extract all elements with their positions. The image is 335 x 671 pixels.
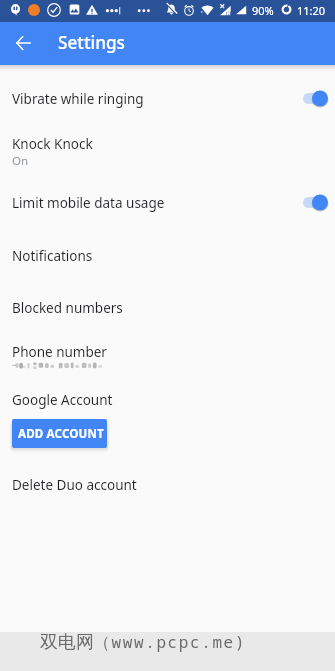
staticText: Delete Duo account <box>12 476 137 494</box>
button[interactable]: Limit mobile data usage <box>0 190 335 243</box>
button[interactable]: Delete Duo account <box>0 472 335 502</box>
button[interactable]: Notifications <box>0 243 335 295</box>
button[interactable]: Knock Knock <box>0 131 335 190</box>
staticText: Blocked numbers <box>12 299 123 317</box>
staticText: 90% <box>252 3 274 18</box>
staticText: Settings <box>58 31 125 54</box>
button[interactable]: Vibrate while ringing <box>0 86 335 131</box>
button[interactable]: ADD ACCOUNT <box>12 419 107 448</box>
staticText: ADD ACCOUNT <box>18 426 104 442</box>
button[interactable]: Phone number <box>0 339 335 387</box>
staticText: Phone number <box>12 343 107 361</box>
staticText: On <box>12 153 29 169</box>
button[interactable]: Blocked numbers <box>0 295 335 347</box>
staticText: （www.pcpc.me) <box>94 631 247 653</box>
staticText: Notifications <box>12 247 93 265</box>
staticText: Limit mobile data usage <box>12 194 165 212</box>
staticText: 双电网 <box>40 631 94 654</box>
staticText: 11:20 <box>297 3 326 18</box>
button[interactable]: Back <box>7 28 37 58</box>
staticText: Vibrate while ringing <box>12 90 144 108</box>
button[interactable]: Google Account <box>0 387 335 420</box>
staticText: Google Account <box>12 391 113 409</box>
staticText: Knock Knock <box>12 135 93 153</box>
